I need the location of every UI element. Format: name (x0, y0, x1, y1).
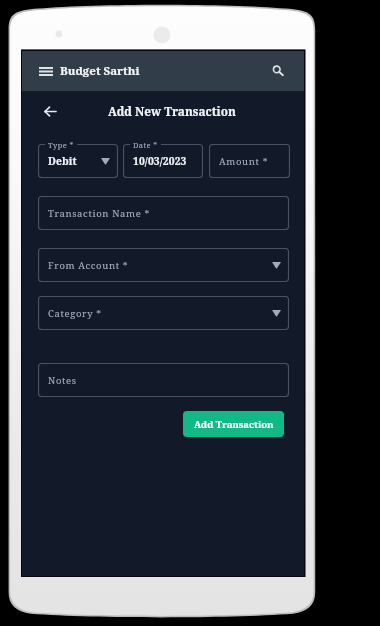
button[interactable]: From Account * (38, 248, 289, 282)
button[interactable]: Search (269, 62, 287, 80)
staticText: From Account * (48, 259, 129, 272)
button[interactable]: Notes (38, 363, 289, 397)
staticText: Transaction Name * (48, 207, 150, 220)
staticText: 10/03/2023 (133, 154, 187, 168)
staticText: Notes (48, 374, 77, 387)
staticText: Debit (48, 154, 77, 168)
button[interactable]: Amount * (209, 144, 290, 178)
button[interactable]: Date * (123, 144, 203, 178)
button[interactable]: Category * (38, 296, 289, 330)
staticText: Add Transaction (194, 418, 274, 431)
button[interactable]: Back (40, 101, 60, 121)
button[interactable]: Menu (37, 62, 55, 80)
staticText: Category * (48, 307, 102, 320)
staticText: Date * (133, 140, 158, 150)
button[interactable]: Type * (38, 144, 118, 178)
staticText: Amount * (219, 155, 269, 168)
staticText: Add New Transaction (108, 103, 236, 119)
staticText: Budget Sarthi (60, 63, 140, 79)
staticText: Type * (48, 140, 74, 150)
button[interactable]: Add Transaction (183, 411, 284, 437)
button[interactable]: Transaction Name * (38, 196, 289, 230)
